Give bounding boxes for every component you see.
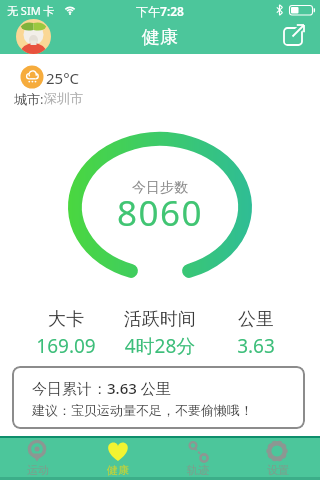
button[interactable]: 公里 (196, 308, 316, 334)
staticText: 健康 (78, 463, 158, 477)
button[interactable]: 活跃时间 (100, 308, 220, 334)
staticText: 大卡 (6, 308, 126, 331)
staticText: 25°C (46, 68, 80, 88)
button[interactable]: 大卡 (6, 308, 126, 334)
staticText: 169.09 (6, 333, 126, 359)
staticText: 4时28分 (100, 333, 220, 359)
staticText: 设置 (238, 463, 318, 477)
button[interactable]: 轨迹 (158, 438, 238, 480)
staticText: 公里 (196, 308, 316, 331)
staticText: 8060 (0, 189, 320, 237)
staticText: 今日累计：3.63 公里 (32, 378, 171, 398)
button[interactable] (14, 60, 194, 106)
staticText: 今日步数 (0, 179, 320, 197)
staticText: 3.63 (196, 333, 316, 359)
staticText: 轨迹 (158, 463, 238, 477)
button[interactable]: 运动 (0, 438, 78, 480)
button[interactable] (16, 19, 51, 54)
button[interactable]: 设置 (238, 438, 318, 480)
staticText: 运动 (0, 463, 78, 477)
staticText: 深圳市 (44, 90, 83, 106)
staticText: 建议：宝贝运动量不足，不要偷懒哦！ (32, 402, 253, 418)
staticText: 城市: (14, 90, 44, 108)
button[interactable]: 健康 (78, 438, 158, 480)
staticText: 无 SIM 卡 (7, 3, 55, 18)
staticText: 下午7:28 (0, 3, 320, 19)
button[interactable]: 今日累计：3.63 公里 (12, 366, 305, 429)
staticText: 活跃时间 (100, 308, 220, 331)
staticText: 健康 (0, 26, 320, 49)
button[interactable] (282, 22, 310, 50)
